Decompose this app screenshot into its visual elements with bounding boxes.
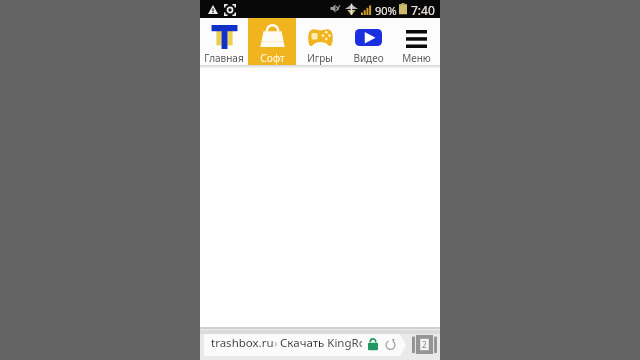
staticText: 7:40	[411, 2, 435, 18]
button[interactable]: Видео	[344, 18, 392, 65]
staticText: Меню	[402, 51, 431, 65]
button[interactable]: Tabs	[409, 332, 440, 357]
staticText: Главная	[204, 51, 244, 65]
staticText: trashbox.ru	[211, 335, 274, 351]
button[interactable]: trashbox.ru	[204, 334, 406, 356]
staticText: ›	[274, 335, 278, 351]
button[interactable]: Игры	[296, 18, 344, 65]
button[interactable]: Меню	[392, 18, 440, 65]
staticText: Игры	[307, 51, 333, 65]
button[interactable]: Софт	[248, 18, 296, 65]
staticText: Скачать KingRo	[280, 335, 362, 351]
staticText: 90%	[375, 3, 397, 18]
staticText: 2	[422, 339, 427, 350]
button[interactable]: Главная	[200, 18, 248, 65]
staticText: Видео	[353, 51, 384, 65]
staticText: Софт	[260, 51, 285, 65]
